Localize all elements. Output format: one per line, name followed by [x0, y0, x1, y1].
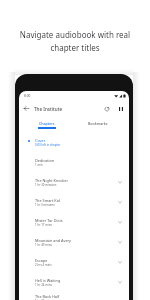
button[interactable]: Bookmarks — [72, 116, 123, 130]
button[interactable]: Escape — [19, 252, 129, 272]
staticText: 1 hr 30 minutes — [35, 183, 57, 187]
button[interactable]: Cover — [19, 132, 129, 152]
staticText: The Night Knocker — [35, 178, 69, 183]
staticText: Mountain and Avery — [35, 238, 72, 243]
button[interactable]: Pause — [113, 101, 128, 116]
staticText: 1 hr 12 mins — [35, 299, 52, 300]
button[interactable]: The Night Knocker — [19, 172, 129, 192]
button[interactable]: Hell is Waiting — [19, 272, 129, 292]
button[interactable]: Mountain and Avery — [19, 232, 129, 252]
button[interactable]: Mister Tar Dicts — [19, 212, 129, 232]
staticText: 1 hr 17 mins — [35, 223, 52, 227]
staticText: Cover — [35, 138, 46, 143]
staticText: The Back Half — [35, 294, 60, 299]
button[interactable]: The Smart Kid — [19, 192, 129, 212]
staticText: Bookmarks — [88, 121, 108, 126]
button[interactable]: The Back Half — [19, 292, 129, 300]
staticText: 0:03 left in chapter — [35, 143, 61, 147]
staticText: 1 hr 24 mins — [35, 283, 52, 287]
staticText: 8:00 — [24, 94, 31, 98]
button[interactable]: Playback speed — [100, 101, 113, 116]
staticText: 1 hr 5 minutes — [35, 203, 55, 207]
staticText: Hell is Waiting — [35, 278, 61, 283]
staticText: 2 hrs 4 mins — [35, 263, 52, 267]
staticText: Mister Tar Dicts — [35, 218, 63, 223]
staticText: 1 hr 49 mins — [35, 243, 52, 247]
staticText: Escape — [35, 258, 48, 263]
staticText: 1 min — [35, 163, 43, 167]
staticText: The Institute — [34, 106, 63, 112]
staticText: Navigate audiobook with real chapter tit… — [14, 29, 136, 53]
staticText: Chapters — [39, 121, 55, 126]
button[interactable]: Chapters — [21, 116, 72, 130]
staticText: Dedication — [35, 158, 55, 163]
staticText: The Smart Kid — [35, 198, 60, 203]
button[interactable]: Dedication — [19, 152, 129, 172]
button[interactable]: Back — [19, 101, 34, 116]
